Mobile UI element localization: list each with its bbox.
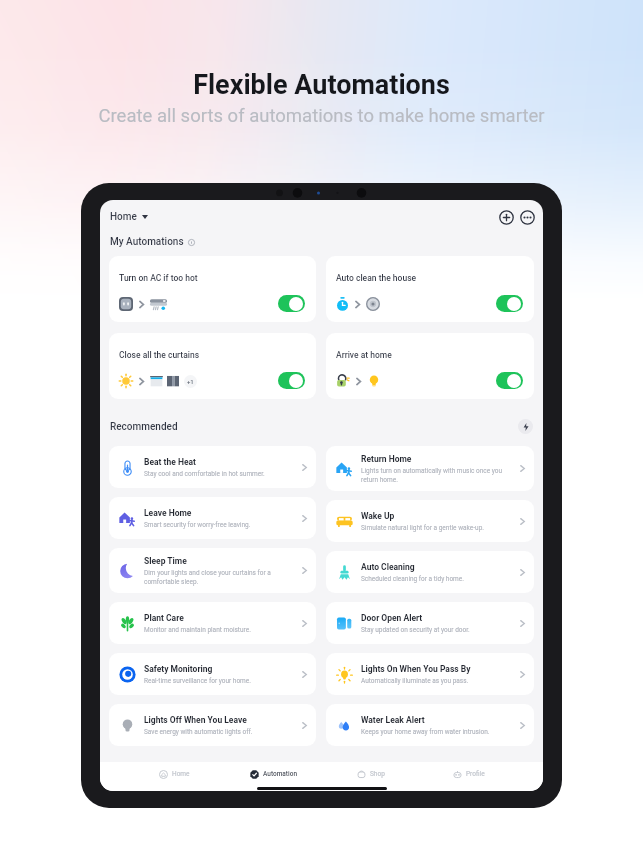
staticText: Scheduled cleaning for a tidy home. [361,575,464,583]
staticText: Safety Monitoring [144,664,213,674]
button[interactable]: Toggle automation [278,295,305,312]
button[interactable]: Toggle automation [278,372,305,389]
button[interactable]: Profile [420,762,518,786]
staticText: Dim your lights and close your curtains … [144,569,298,585]
button[interactable]: Shop [322,762,420,786]
staticText: Return Home [361,454,412,464]
staticText: Door Open Alert [361,613,423,623]
staticText: Monitor and maintain plant moisture. [144,626,251,634]
button[interactable]: Auto Cleaning [326,551,534,593]
staticText: Shop [370,770,385,778]
staticText: Home [110,211,137,223]
staticText: My Automations [110,236,184,248]
staticText: Real-time surveillance for your home. [144,677,251,685]
staticText: +1 [187,378,194,385]
staticText: Recommended [110,421,178,433]
staticText: Save energy with automatic lights off. [144,728,253,736]
staticText: Lights turn on automatically with music … [361,467,516,483]
button[interactable]: Beat the Heat [109,446,316,488]
staticText: Leave Home [144,508,192,518]
button[interactable]: Add automation [499,210,514,225]
staticText: Keeps your home away from water intrusio… [361,728,490,736]
button[interactable]: Sleep Time [109,548,316,593]
button[interactable]: Turn on AC if too hot [109,256,316,322]
staticText: Stay updated on security at your door. [361,626,470,634]
staticText: Auto Cleaning [361,562,415,572]
staticText: Turn on AC if too hot [119,273,198,283]
button[interactable]: Safety Monitoring [109,653,316,695]
button[interactable]: Magic suggestions [518,419,533,434]
button[interactable]: Lights On When You Pass By [326,653,534,695]
button[interactable]: Plant Care [109,602,316,644]
staticText: Sleep Time [144,556,187,566]
button[interactable]: Toggle automation [496,295,523,312]
button[interactable]: Water Leak Alert [326,704,534,746]
staticText: Water Leak Alert [361,715,425,725]
staticText: Close all the curtains [119,350,200,360]
staticText: Home [172,770,190,778]
staticText: Arrive at home [336,350,392,360]
staticText: Plant Care [144,613,184,623]
staticText: Smart security for worry-free leaving. [144,521,251,529]
button[interactable]: Automation [224,762,322,786]
button[interactable]: Return Home [326,446,534,491]
button[interactable]: Leave Home [109,497,316,539]
button[interactable]: Home [108,209,150,225]
button[interactable]: Home [125,762,224,786]
button[interactable]: Door Open Alert [326,602,534,644]
staticText: Stay cool and comfortable in hot summer. [144,470,265,478]
button[interactable]: Lights Off When You Leave [109,704,316,746]
staticText: Auto clean the house [336,273,417,283]
staticText: Simulate natural light for a gentle wake… [361,524,485,532]
staticText: Create all sorts of automations to make … [0,105,643,127]
button[interactable]: Close all the curtains [109,333,316,399]
staticText: Beat the Heat [144,457,196,467]
staticText: Automatically illuminate as you pass. [361,677,469,685]
button[interactable]: Toggle automation [496,372,523,389]
button[interactable]: Auto clean the house [326,256,534,322]
button[interactable]: Arrive at home [326,333,534,399]
staticText: Wake Up [361,511,395,521]
staticText: Automation [263,770,297,778]
staticText: Flexible Automations [0,69,643,101]
button[interactable]: More options [520,210,535,225]
button[interactable]: Wake Up [326,500,534,542]
staticText: Profile [466,770,485,778]
staticText: Lights Off When You Leave [144,715,247,725]
staticText: Lights On When You Pass By [361,664,471,674]
